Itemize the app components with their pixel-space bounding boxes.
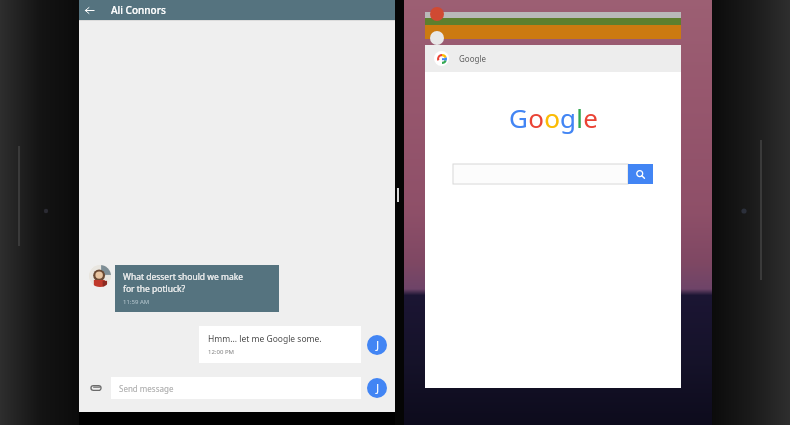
button[interactable]: Back	[79, 0, 99, 20]
staticText: o	[528, 100, 544, 135]
button[interactable]	[453, 164, 628, 184]
staticText: J	[376, 381, 379, 395]
staticText: What dessert should we make for the potl…	[123, 271, 244, 295]
button[interactable]: J	[367, 378, 387, 398]
button[interactable]: Search	[628, 164, 653, 184]
staticText: g	[560, 100, 576, 135]
button[interactable]: Send message	[111, 377, 361, 399]
staticText: o	[544, 100, 560, 135]
staticText: e	[583, 100, 598, 135]
staticText: 12:00 PM	[208, 348, 234, 356]
staticText: Ali Connors	[111, 3, 166, 17]
staticText: Google	[459, 53, 486, 64]
button[interactable]: J	[367, 335, 387, 355]
staticText: 11:59 AM	[123, 298, 150, 306]
button[interactable]: Hmm... let me Google some.	[199, 326, 361, 363]
staticText: G	[509, 100, 528, 135]
button[interactable]: What dessert should we make for the potl…	[115, 265, 279, 312]
button[interactable]: Ali Connors avatar	[89, 265, 111, 287]
staticText: Hmm... let me Google some.	[208, 333, 322, 345]
staticText: J	[376, 338, 379, 352]
button[interactable]: Attach file	[87, 379, 105, 397]
button[interactable]: Google	[425, 45, 681, 388]
staticText: l	[576, 100, 583, 135]
staticText: Send message	[119, 383, 174, 394]
